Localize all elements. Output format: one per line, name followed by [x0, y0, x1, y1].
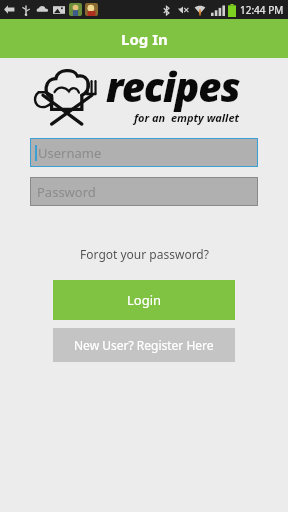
button[interactable]: Forgot your password? [72, 244, 217, 264]
button[interactable]: Password [30, 177, 258, 206]
staticText: 12:44 PM [240, 3, 284, 17]
button[interactable]: New User? Register Here [53, 328, 235, 362]
staticText: for an empty wallet [134, 110, 240, 125]
staticText: recipes [106, 59, 240, 113]
staticText: Username [38, 144, 102, 162]
staticText: Forgot your password? [80, 246, 209, 262]
staticText: Password [37, 183, 96, 201]
staticText: Log In [121, 29, 168, 49]
staticText: Login [127, 291, 162, 309]
staticText: New User? Register Here [74, 337, 214, 353]
button[interactable]: Username [30, 138, 258, 167]
button[interactable]: Login [53, 280, 235, 320]
